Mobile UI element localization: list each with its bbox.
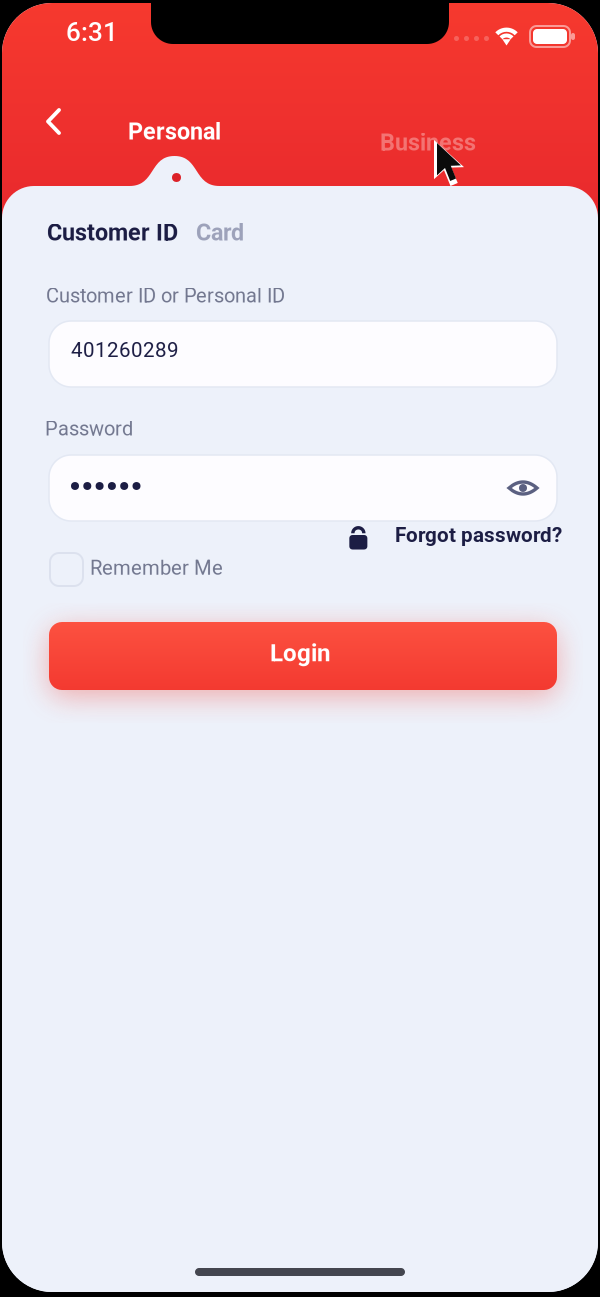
staticText: Forgot password? (395, 523, 562, 547)
staticText: Card (196, 219, 244, 246)
staticText: 6:31 (66, 17, 118, 47)
staticText: Business (380, 129, 476, 156)
button[interactable]: Remember Me (49, 551, 279, 589)
button[interactable]: Business (368, 123, 494, 163)
staticText: Password (45, 417, 133, 440)
button[interactable]: Card (196, 219, 244, 246)
staticText: Customer ID (47, 219, 178, 246)
staticText: Personal (128, 118, 221, 145)
button[interactable]: Show password (501, 467, 545, 509)
staticText: Customer ID or Personal ID (46, 284, 285, 307)
staticText: Remember Me (90, 556, 223, 580)
button[interactable]: Forgot password? (344, 520, 564, 554)
staticText: Login (270, 639, 331, 667)
button[interactable]: Back (26, 94, 82, 150)
staticText: 401260289 (71, 338, 179, 362)
button[interactable]: Login (49, 622, 557, 690)
button[interactable]: Personal (114, 112, 242, 152)
button[interactable]: Customer ID (47, 219, 178, 246)
